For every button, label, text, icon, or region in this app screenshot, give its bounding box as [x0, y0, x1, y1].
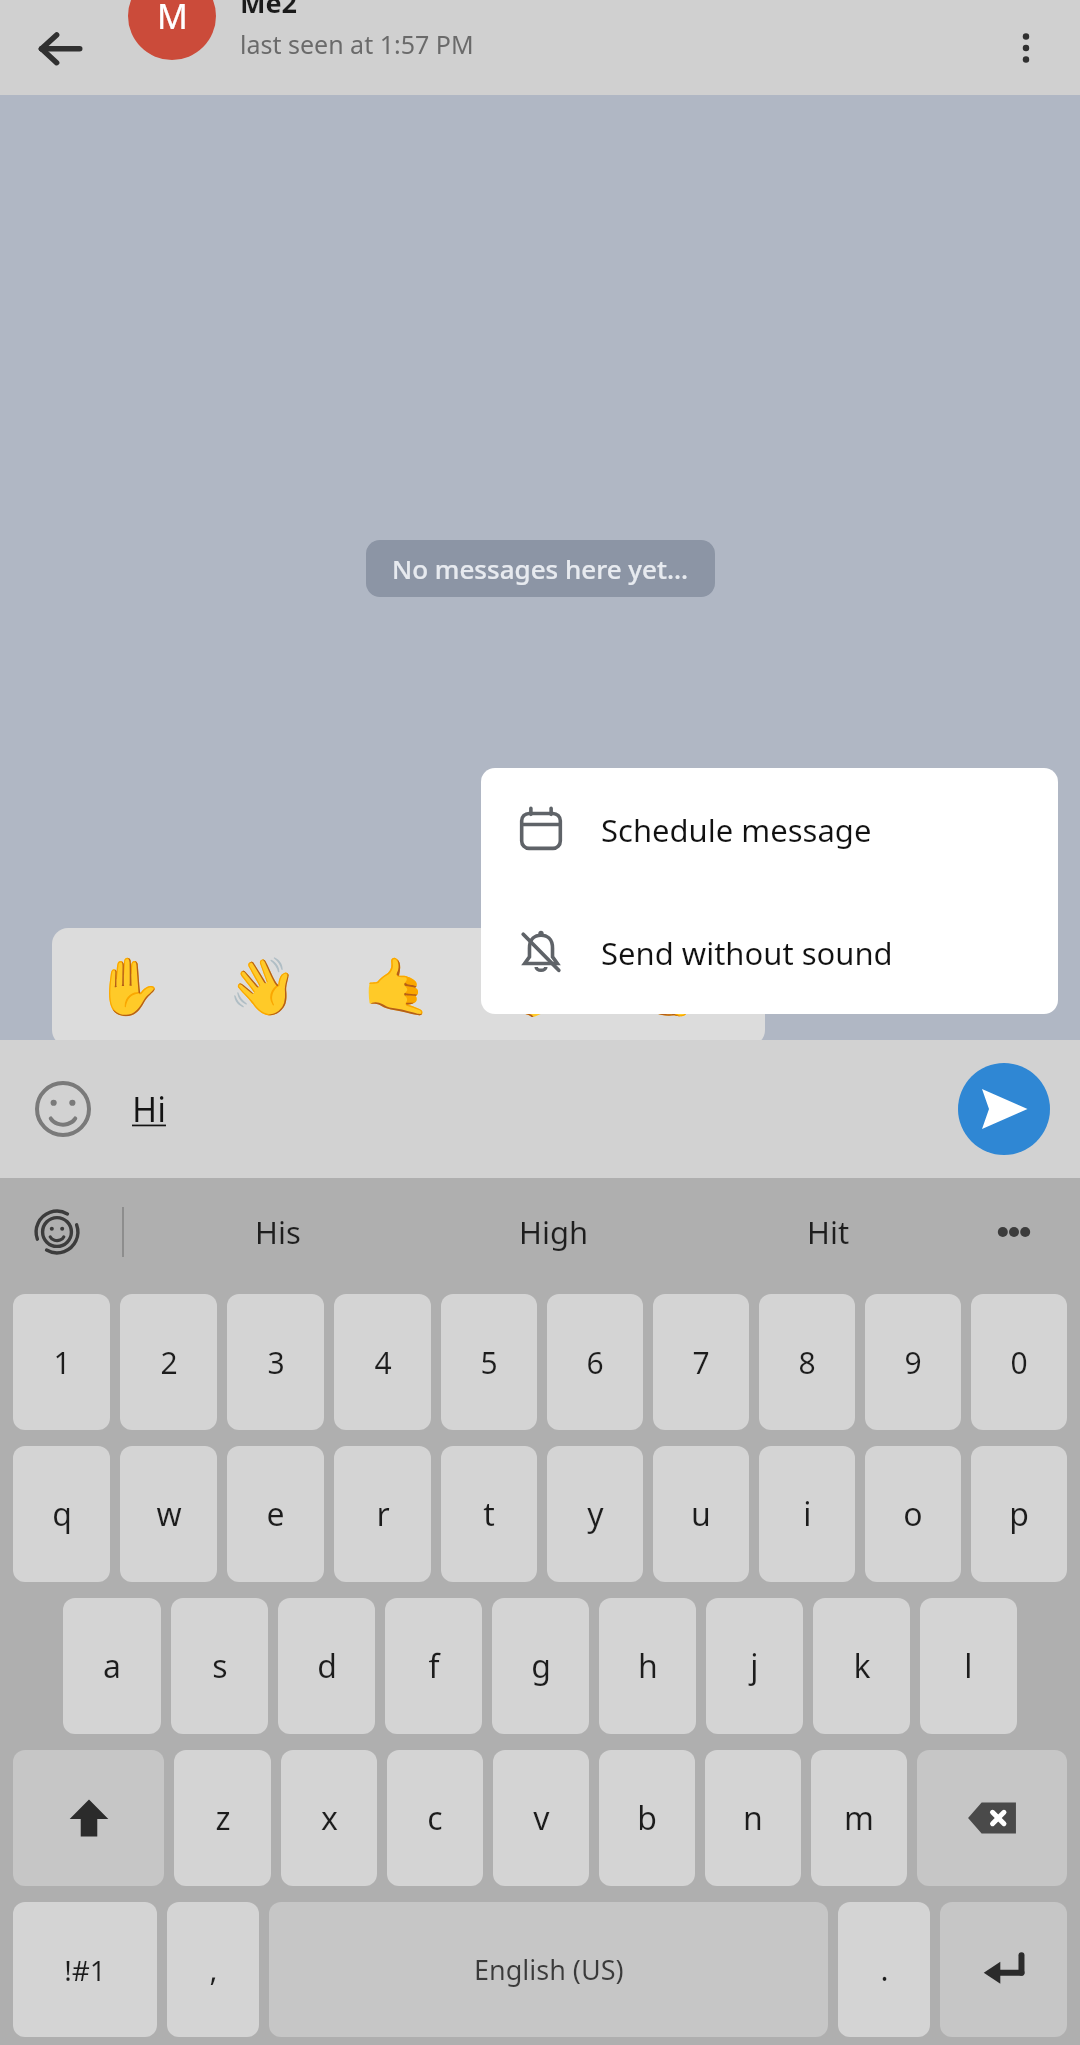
button[interactable]: g — [492, 1598, 589, 1734]
staticText: 3 — [267, 1342, 285, 1383]
button[interactable]: 👋 — [196, 928, 330, 1046]
button[interactable]: , — [167, 1902, 259, 2037]
button[interactable]: 👍 — [598, 928, 732, 1046]
button[interactable]: e — [227, 1446, 324, 1582]
staticText: 👋 — [228, 954, 298, 1020]
staticText: k — [853, 1644, 871, 1688]
button[interactable]: b — [599, 1750, 695, 1886]
button[interactable]: 👌 — [464, 928, 598, 1046]
button[interactable]: u — [653, 1446, 749, 1582]
button[interactable]: r — [334, 1446, 431, 1582]
button[interactable]: Emoji — [22, 1068, 104, 1150]
staticText: t — [483, 1492, 495, 1536]
staticText: Send without sound — [601, 932, 893, 974]
button[interactable]: Key — [940, 1902, 1067, 2037]
staticText: last seen at 1:57 PM — [240, 27, 474, 61]
button[interactable]: 0 — [971, 1294, 1067, 1430]
staticText: ✋ — [94, 954, 164, 1020]
button[interactable]: f — [385, 1598, 482, 1734]
button[interactable]: Key — [13, 1750, 164, 1886]
button[interactable]: v — [493, 1750, 589, 1886]
button[interactable]: Back — [22, 10, 98, 86]
button[interactable]: His — [140, 1178, 416, 1286]
staticText: x — [321, 1796, 338, 1840]
button[interactable]: Send — [958, 1063, 1050, 1155]
button[interactable]: a — [63, 1598, 161, 1734]
staticText: 6 — [586, 1342, 604, 1383]
staticText: l — [964, 1644, 973, 1688]
staticText: v — [533, 1796, 550, 1840]
button[interactable]: q — [13, 1446, 110, 1582]
button[interactable]: 2 — [120, 1294, 217, 1430]
button[interactable]: x — [281, 1750, 377, 1886]
staticText: 9 — [904, 1342, 922, 1383]
button[interactable]: More suggestions — [966, 1178, 1062, 1286]
button[interactable]: z — [174, 1750, 271, 1886]
button[interactable]: Schedule message — [481, 768, 1058, 891]
button[interactable]: h — [599, 1598, 696, 1734]
staticText: q — [52, 1492, 72, 1536]
button[interactable]: More options — [990, 12, 1062, 84]
staticText: 5 — [480, 1342, 498, 1383]
button[interactable]: 8 — [759, 1294, 855, 1430]
staticText: o — [903, 1492, 923, 1536]
staticText: , — [209, 1949, 218, 1990]
staticText: e — [266, 1492, 285, 1536]
staticText: 👌 — [496, 954, 566, 1020]
staticText: Hi — [132, 1086, 166, 1132]
button[interactable]: Profile photo — [128, 0, 216, 60]
staticText: Hit — [807, 1211, 850, 1253]
staticText: 7 — [692, 1342, 710, 1383]
button[interactable]: 7 — [653, 1294, 749, 1430]
button[interactable]: o — [865, 1446, 961, 1582]
staticText: !#1 — [64, 1951, 106, 1989]
staticText: 8 — [798, 1342, 816, 1383]
staticText: Me2 — [240, 0, 298, 21]
button[interactable]: n — [705, 1750, 801, 1886]
staticText: p — [1009, 1492, 1029, 1536]
button[interactable]: Hi — [132, 1086, 166, 1132]
button[interactable]: l — [920, 1598, 1017, 1734]
staticText: u — [691, 1492, 711, 1536]
button[interactable]: t — [441, 1446, 537, 1582]
staticText: h — [638, 1644, 658, 1688]
button[interactable]: c — [387, 1750, 483, 1886]
staticText: 0 — [1010, 1342, 1028, 1383]
button[interactable]: . — [838, 1902, 930, 2037]
staticText: 4 — [374, 1342, 392, 1383]
staticText: y — [587, 1492, 604, 1536]
button[interactable]: s — [171, 1598, 268, 1734]
staticText: Schedule message — [601, 809, 872, 851]
button[interactable]: 1 — [13, 1294, 110, 1430]
button[interactable]: y — [547, 1446, 643, 1582]
button[interactable]: p — [971, 1446, 1067, 1582]
button[interactable]: 4 — [334, 1294, 431, 1430]
button[interactable]: English (US) — [269, 1902, 828, 2037]
button[interactable]: 6 — [547, 1294, 643, 1430]
button[interactable]: 9 — [865, 1294, 961, 1430]
button[interactable]: d — [278, 1598, 375, 1734]
staticText: d — [317, 1644, 337, 1688]
button[interactable]: w — [120, 1446, 217, 1582]
button[interactable]: i — [759, 1446, 855, 1582]
button[interactable]: Switch to emoji — [22, 1197, 92, 1267]
staticText: s — [212, 1644, 228, 1688]
button[interactable]: m — [811, 1750, 907, 1886]
button[interactable]: High — [416, 1178, 691, 1286]
button[interactable]: !#1 — [13, 1902, 157, 2037]
staticText: j — [750, 1644, 759, 1688]
button[interactable]: 🤙 — [330, 928, 464, 1046]
staticText: English (US) — [474, 1951, 624, 1988]
button[interactable]: ✋ — [62, 928, 196, 1046]
button[interactable]: 3 — [227, 1294, 324, 1430]
button[interactable]: Key — [917, 1750, 1067, 1886]
staticText: His — [255, 1211, 301, 1253]
button[interactable]: j — [706, 1598, 803, 1734]
staticText: g — [531, 1644, 551, 1688]
button[interactable]: 5 — [441, 1294, 537, 1430]
staticText: High — [519, 1211, 589, 1253]
staticText: 👍 — [630, 954, 700, 1020]
button[interactable]: Hit — [691, 1178, 966, 1286]
button[interactable]: Send without sound — [481, 891, 1058, 1014]
button[interactable]: k — [813, 1598, 910, 1734]
